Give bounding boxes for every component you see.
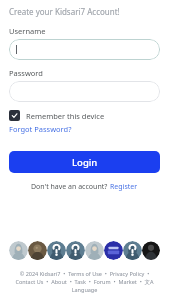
button[interactable]: User 4: [66, 241, 85, 260]
button[interactable]: User 1: [9, 241, 28, 260]
staticText: Don't have an account?: [31, 182, 110, 192]
button[interactable]: User 3: [47, 241, 66, 260]
button[interactable]: [9, 81, 160, 102]
staticText: Username: [9, 26, 46, 36]
button[interactable]: User 6: [104, 241, 123, 260]
staticText: Register: [110, 182, 138, 192]
staticText: Forgot Password?: [9, 124, 72, 134]
staticText: © 2024 Kidsari7 • Terms of Use • Privacy…: [9, 270, 160, 294]
staticText: Password: [9, 68, 43, 78]
button[interactable]: User 2: [28, 241, 47, 260]
button[interactable]: Remember this device: [9, 110, 105, 121]
staticText: Create your Kidsari7 Account!: [9, 6, 120, 17]
button[interactable]: Login: [9, 151, 160, 173]
staticText: Login: [72, 156, 98, 169]
staticText: Remember this device: [26, 111, 105, 121]
button[interactable]: User 5: [85, 241, 104, 260]
button[interactable]: Don't have an account?: [31, 182, 138, 192]
button[interactable]: Forgot Password?: [9, 124, 72, 134]
button[interactable]: User 7: [123, 241, 142, 260]
button[interactable]: [9, 39, 160, 60]
button[interactable]: User 8: [142, 241, 160, 260]
